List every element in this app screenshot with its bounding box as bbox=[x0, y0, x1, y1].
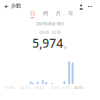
button[interactable]: 周 bbox=[39, 10, 52, 18]
staticText: 2021年08月18日 bbox=[36, 21, 64, 26]
staticText: 00:00 - 23:59 bbox=[39, 29, 60, 35]
staticText: 年 bbox=[68, 10, 73, 17]
staticText: 日 bbox=[30, 10, 35, 17]
button[interactable]: Share bbox=[77, 2, 85, 10]
staticText: 00:00 bbox=[6, 86, 15, 90]
staticText: 12:00 bbox=[50, 86, 59, 90]
button[interactable]: 年 bbox=[64, 10, 77, 18]
staticText: 步 bbox=[64, 45, 68, 50]
staticText: 04:00 bbox=[20, 86, 29, 90]
button[interactable]: More options bbox=[86, 4, 94, 9]
button[interactable]: 月 bbox=[52, 10, 64, 18]
staticText: 08:00 bbox=[35, 86, 44, 90]
staticText: 20:00 bbox=[74, 86, 83, 90]
button[interactable]: Back bbox=[3, 2, 11, 11]
staticText: 周 bbox=[43, 10, 48, 17]
button[interactable]: 日 bbox=[26, 10, 39, 18]
staticText: 步数 bbox=[11, 2, 21, 9]
staticText: 16:00 bbox=[61, 86, 70, 90]
staticText: 月 bbox=[55, 10, 60, 17]
staticText: 5,974 bbox=[32, 35, 63, 51]
